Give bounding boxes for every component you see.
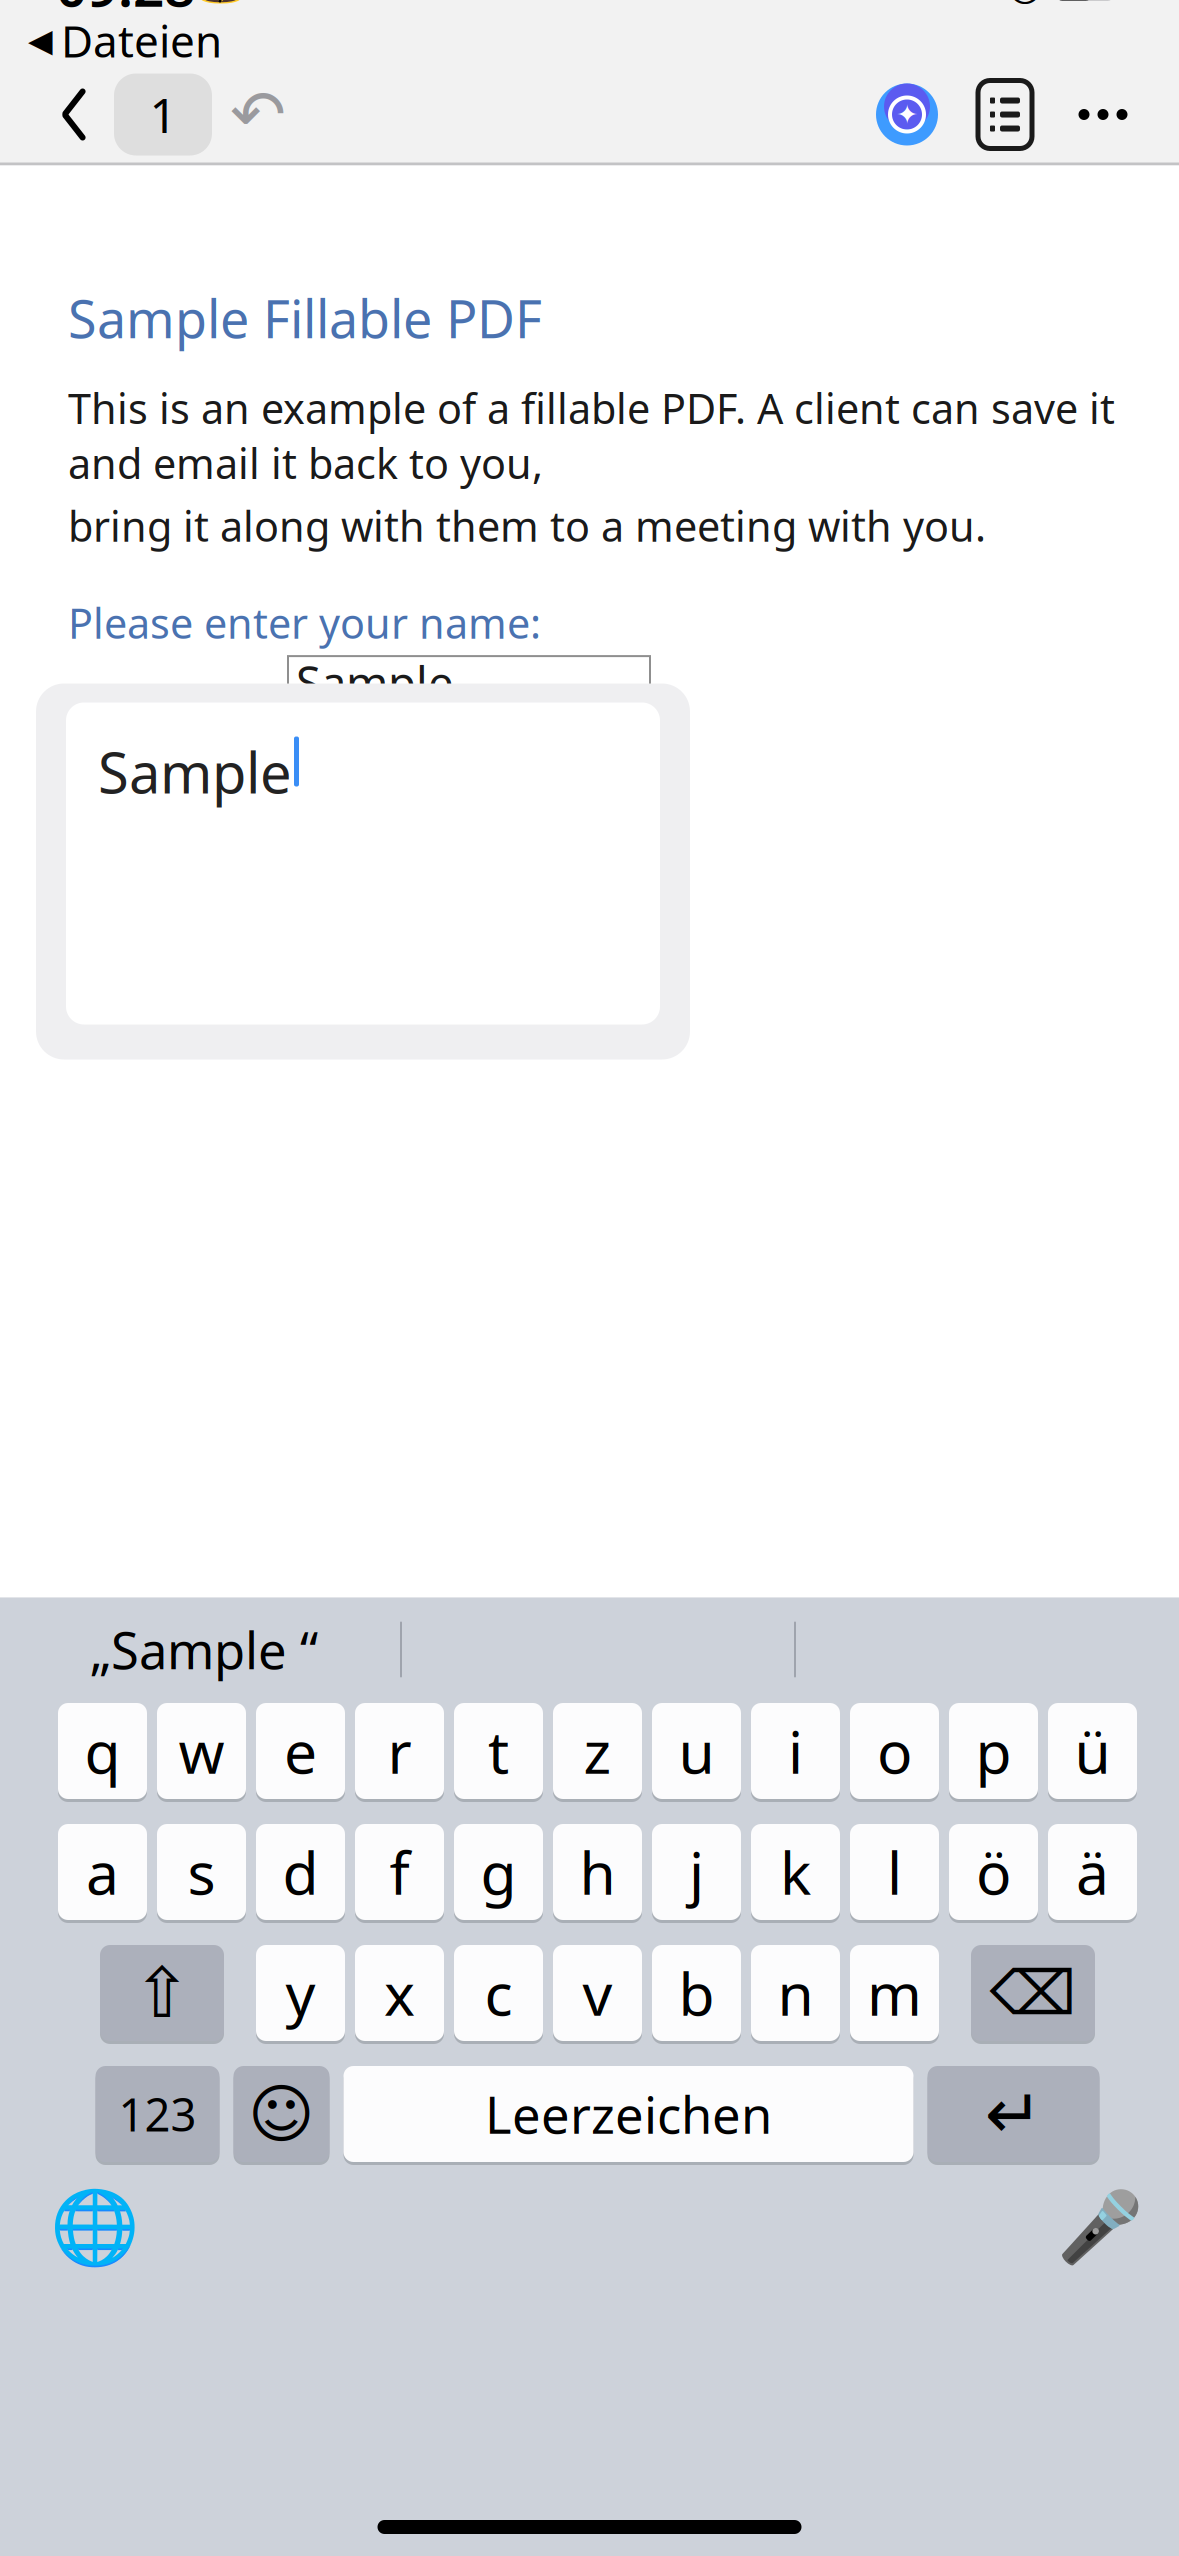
staticText: i [788, 1712, 803, 1790]
button[interactable]: Page 1 [114, 73, 212, 155]
staticText: Dateien [61, 11, 222, 70]
button[interactable]: x [355, 1943, 444, 2042]
staticText: l [887, 1833, 902, 1911]
button[interactable]: 123 [95, 2064, 219, 2163]
button[interactable]: ◀ [24, 9, 226, 72]
staticText: Sample Fillable PDF [68, 283, 542, 353]
button[interactable]: w [157, 1701, 246, 1800]
staticText: Leerzeichen [485, 2080, 772, 2148]
button[interactable]: ö [949, 1822, 1038, 1921]
staticText: ◀ [28, 22, 53, 59]
staticText: ↵ [984, 2075, 1042, 2153]
button[interactable]: h [553, 1822, 642, 1921]
staticText: ↶ [230, 77, 286, 152]
button[interactable]: u [652, 1701, 741, 1800]
staticText: t [488, 1712, 509, 1790]
button[interactable]: ü [1048, 1701, 1137, 1800]
button[interactable]: p [949, 1701, 1038, 1800]
staticText: 123 [118, 2084, 196, 2144]
staticText: ☺ [248, 2078, 315, 2150]
button[interactable]: s [157, 1822, 246, 1921]
button[interactable]: j [652, 1822, 741, 1921]
staticText: a [86, 1833, 119, 1911]
button[interactable]: d [256, 1822, 345, 1921]
button[interactable]: r [355, 1701, 444, 1800]
staticText: h [579, 1833, 615, 1911]
staticText: ä [1076, 1833, 1109, 1911]
staticText: s [187, 1833, 215, 1911]
button[interactable]: y [256, 1943, 345, 2042]
button[interactable]: b [652, 1943, 741, 2042]
button[interactable]: Shift [100, 1943, 224, 2042]
staticText: bring it along with them to a meeting wi… [68, 498, 986, 553]
button[interactable]: Undo [212, 72, 304, 156]
staticText: q [84, 1712, 120, 1790]
staticText: f [389, 1833, 409, 1911]
staticText: ◓ [1007, 0, 1042, 8]
staticText: Please enter your name: [68, 595, 541, 650]
button[interactable]: i [751, 1701, 840, 1800]
button[interactable]: „Sample “ [8, 1606, 400, 1692]
button[interactable]: Back [34, 72, 114, 156]
staticText: 🎤 [1057, 2188, 1143, 2267]
button[interactable]: l [850, 1822, 939, 1921]
staticText: m [867, 1954, 922, 2032]
staticText: ✦ [896, 99, 918, 130]
staticText: x [384, 1954, 415, 2032]
button[interactable]: t [454, 1701, 543, 1800]
staticText: This is an example of a fillable PDF. A … [68, 381, 1115, 490]
button[interactable]: Page thumbnails [949, 72, 1061, 156]
staticText: y [285, 1954, 315, 2032]
button[interactable]: Next keyboard [40, 2172, 150, 2282]
staticText: c [484, 1954, 512, 2032]
staticText: j [689, 1833, 704, 1911]
staticText: w [178, 1712, 224, 1790]
staticText: v [582, 1954, 612, 2032]
button[interactable]: n [751, 1943, 840, 2042]
button[interactable]: c [454, 1943, 543, 2042]
button[interactable]: Dictation [1045, 2172, 1155, 2282]
staticText: e [284, 1712, 317, 1790]
staticText: Sample [98, 734, 292, 809]
button[interactable]: a [58, 1822, 147, 1921]
button[interactable]: v [553, 1943, 642, 2042]
button[interactable]: m [850, 1943, 939, 2042]
button[interactable]: o [850, 1701, 939, 1800]
staticText: n [777, 1954, 813, 2032]
staticText: g [480, 1833, 516, 1911]
button[interactable]: q [58, 1701, 147, 1800]
staticText: 🔔 [198, 0, 241, 5]
button[interactable]: Apple Intelligence [865, 72, 949, 156]
staticText: 60 [1059, 0, 1093, 5]
staticText: 🌐 [50, 2186, 140, 2269]
staticText: u [678, 1712, 714, 1790]
staticText: ⇧ [133, 1954, 191, 2032]
staticText: r [387, 1712, 411, 1790]
staticText: z [583, 1712, 611, 1790]
button[interactable]: g [454, 1822, 543, 1921]
staticText: k [780, 1833, 811, 1911]
staticText: p [975, 1712, 1011, 1790]
button[interactable]: Return [927, 2064, 1099, 2163]
button[interactable]: More [1061, 72, 1145, 156]
staticText: b [678, 1954, 714, 2032]
button[interactable]: Leerzeichen [343, 2064, 913, 2163]
staticText: 1 [149, 83, 176, 146]
button[interactable]: Delete [971, 1943, 1095, 2042]
button[interactable]: k [751, 1822, 840, 1921]
staticText: d [282, 1833, 318, 1911]
staticText: ü [1074, 1712, 1110, 1790]
staticText: ⌫ [989, 1958, 1076, 2028]
button[interactable]: f [355, 1822, 444, 1921]
button[interactable]: e [256, 1701, 345, 1800]
staticText: o [877, 1712, 912, 1790]
button[interactable]: Emoji [233, 2064, 329, 2163]
staticText: „Sample “ [90, 1616, 318, 1683]
button[interactable]: z [553, 1701, 642, 1800]
staticText: Sample [296, 652, 454, 712]
button[interactable]: ä [1048, 1822, 1137, 1921]
staticText: 09:28 [56, 0, 195, 22]
staticText: ö [976, 1833, 1011, 1911]
